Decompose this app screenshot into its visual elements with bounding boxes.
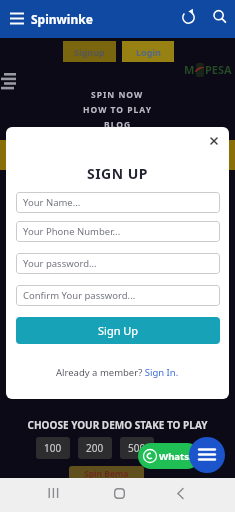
- staticText: M: [184, 62, 195, 77]
- staticText: Login: [136, 46, 161, 58]
- staticText: 500: [128, 441, 146, 455]
- button[interactable]: Your Phone Number...: [16, 221, 220, 242]
- staticText: Your password...: [23, 257, 97, 270]
- staticText: HOW TO PLAY: [83, 104, 152, 116]
- staticText: PESA: [205, 62, 232, 77]
- staticText: Signup: [74, 46, 105, 58]
- button[interactable]: 500: [120, 437, 154, 459]
- button[interactable]: Signup: [63, 41, 116, 62]
- button[interactable]: [189, 437, 225, 473]
- button[interactable]: 200: [78, 437, 112, 459]
- button[interactable]: [178, 7, 199, 28]
- button[interactable]: [210, 7, 231, 28]
- button[interactable]: Confirm Your password...: [16, 285, 220, 306]
- button[interactable]: Your password...: [16, 253, 220, 274]
- button[interactable]: HOW TO PLAY: [83, 104, 152, 116]
- staticText: 200: [86, 441, 104, 455]
- staticText: Your Phone Number...: [23, 225, 121, 238]
- staticText: Sign Up: [98, 323, 139, 338]
- button[interactable]: [6, 9, 28, 29]
- staticText: SPIN NOW: [91, 89, 144, 101]
- button[interactable]: SPIN NOW: [91, 89, 144, 101]
- staticText: BLOG: [104, 119, 132, 131]
- staticText: Spin Bema: [84, 468, 129, 480]
- button[interactable]: WhatsA: [138, 443, 200, 469]
- button[interactable]: [206, 133, 222, 149]
- staticText: Already a member? Sign In.: [56, 366, 179, 379]
- button[interactable]: Already a member? Sign In.: [56, 366, 179, 379]
- staticText: SIGN UP: [6, 164, 229, 183]
- staticText: Spinwinke: [31, 11, 93, 27]
- button[interactable]: BLOG: [104, 119, 132, 131]
- button[interactable]: [42, 482, 64, 504]
- button[interactable]: 100: [36, 437, 70, 459]
- button[interactable]: Sign Up: [16, 317, 220, 344]
- staticText: Your Name...: [23, 196, 81, 209]
- button[interactable]: [169, 482, 191, 504]
- staticText: WhatsA: [159, 450, 196, 463]
- button[interactable]: Login: [122, 41, 174, 62]
- staticText: 100: [44, 441, 62, 455]
- staticText: CHOOSE YOUR DEMO STAKE TO PLAY: [0, 418, 235, 432]
- staticText: Confirm Your password...: [23, 289, 136, 302]
- button[interactable]: Spin Bema: [69, 466, 144, 480]
- button[interactable]: Your Name...: [16, 192, 220, 213]
- button[interactable]: [108, 482, 130, 504]
